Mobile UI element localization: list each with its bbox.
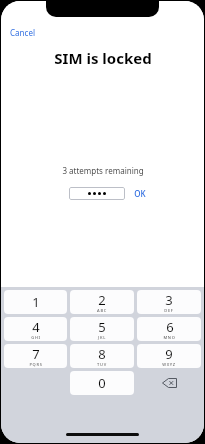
staticText: OK	[134, 188, 146, 199]
staticText: 3	[165, 291, 173, 309]
button[interactable]: 9	[137, 344, 201, 368]
button[interactable]: 5	[70, 317, 134, 341]
button[interactable]: 4	[4, 317, 67, 341]
button[interactable]: 3	[137, 290, 201, 314]
staticText: 0	[98, 374, 106, 392]
staticText: PQRS	[29, 362, 43, 367]
staticText: 8	[98, 345, 106, 363]
staticText: 7	[32, 345, 40, 363]
button[interactable]: 0	[70, 371, 134, 395]
staticText: MNO	[163, 335, 176, 340]
button[interactable]: OK	[132, 186, 148, 201]
staticText: 2	[98, 291, 106, 309]
staticText: TUV	[97, 362, 107, 367]
staticText: Cancel	[10, 27, 35, 38]
staticText: SIM is locked	[54, 48, 152, 68]
staticText: 4	[32, 318, 40, 336]
staticText: 3 attempts remaining	[62, 165, 144, 176]
staticText: 6	[166, 318, 174, 336]
button[interactable]: 6	[137, 317, 201, 341]
button[interactable]: 7	[4, 344, 67, 368]
staticText: WXYZ	[162, 362, 176, 367]
staticText: JKL	[98, 335, 106, 340]
button[interactable]: Cancel	[8, 25, 37, 40]
staticText: 1	[32, 293, 40, 311]
staticText: 9	[165, 345, 173, 363]
staticText: GHI	[31, 335, 41, 340]
button[interactable]: Delete	[137, 371, 201, 395]
button[interactable]: 1	[4, 290, 67, 314]
staticText: 5	[98, 318, 106, 336]
staticText: DEF	[164, 308, 174, 313]
staticText: ABC	[97, 308, 107, 313]
button[interactable]	[69, 187, 125, 200]
button[interactable]: 8	[70, 344, 134, 368]
button[interactable]: 2	[70, 290, 134, 314]
